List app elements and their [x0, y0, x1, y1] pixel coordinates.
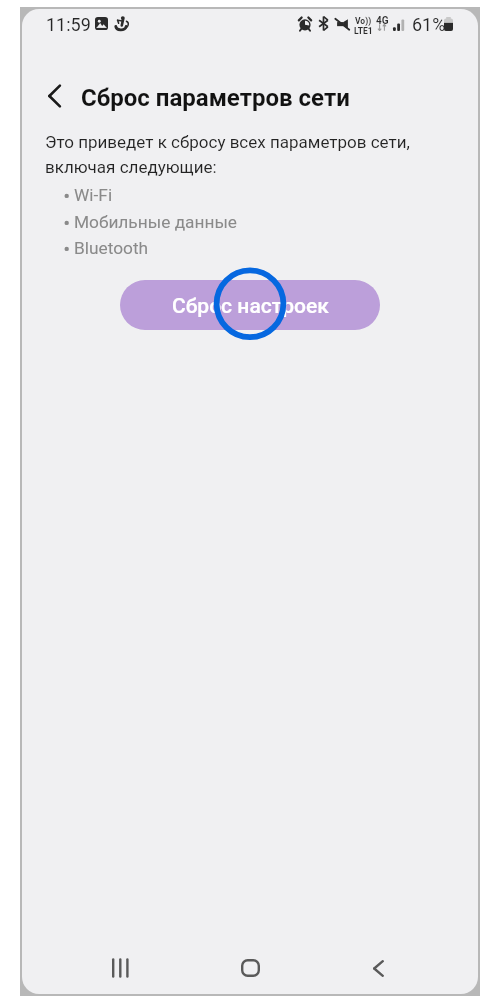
staticText: Это приведет к сбросу всех параметров се… [45, 132, 410, 152]
staticText: Wi-Fi [74, 185, 113, 205]
staticText: 4G [376, 15, 389, 27]
staticText: Bluetooth [74, 238, 149, 258]
staticText: Мобильные данные [74, 212, 238, 232]
staticText: 11:59 [46, 14, 91, 35]
button[interactable]: Назад [348, 938, 408, 994]
staticText: 61% [412, 14, 446, 35]
button[interactable]: Главный экран [220, 938, 280, 994]
button[interactable]: Сброс настроек [120, 280, 380, 330]
button[interactable]: Недавние приложения [90, 938, 150, 994]
staticText: Сброс параметров сети [81, 84, 350, 112]
staticText: Vo)) [355, 16, 372, 26]
staticText: включая следующие: [45, 157, 217, 177]
staticText: Сброс настроек [172, 294, 329, 319]
staticText: LTE1 [354, 26, 373, 36]
button[interactable]: Назад [37, 78, 73, 114]
